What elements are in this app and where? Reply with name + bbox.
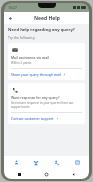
staticText: Get instant response to your queries fro… bbox=[11, 101, 82, 109]
staticText: Need Help bbox=[34, 15, 60, 22]
button[interactable]: Profile bbox=[68, 156, 86, 169]
button[interactable]: Want response for any query? bbox=[8, 83, 85, 124]
button[interactable]: Activity bbox=[48, 156, 66, 169]
staticText: Mail assistance via mail bbox=[11, 55, 49, 60]
staticText: Within 2 points bbox=[11, 61, 32, 65]
staticText: Contact customer support bbox=[11, 116, 54, 121]
button[interactable]: Groups bbox=[27, 156, 45, 169]
staticText: Want response for any query? bbox=[11, 95, 60, 100]
button[interactable]: Mail assistance via mail bbox=[8, 43, 85, 80]
button[interactable]: Back bbox=[72, 173, 75, 176]
button[interactable]: Home bbox=[7, 156, 25, 169]
staticText: 10:27 bbox=[8, 5, 17, 10]
staticText: Try the following bbox=[8, 35, 35, 40]
button[interactable]: Back bbox=[4, 12, 16, 24]
staticText: Need help regarding any query? bbox=[8, 27, 75, 33]
button[interactable]: Home bbox=[45, 173, 48, 176]
staticText: Share your query through mail bbox=[11, 72, 61, 77]
